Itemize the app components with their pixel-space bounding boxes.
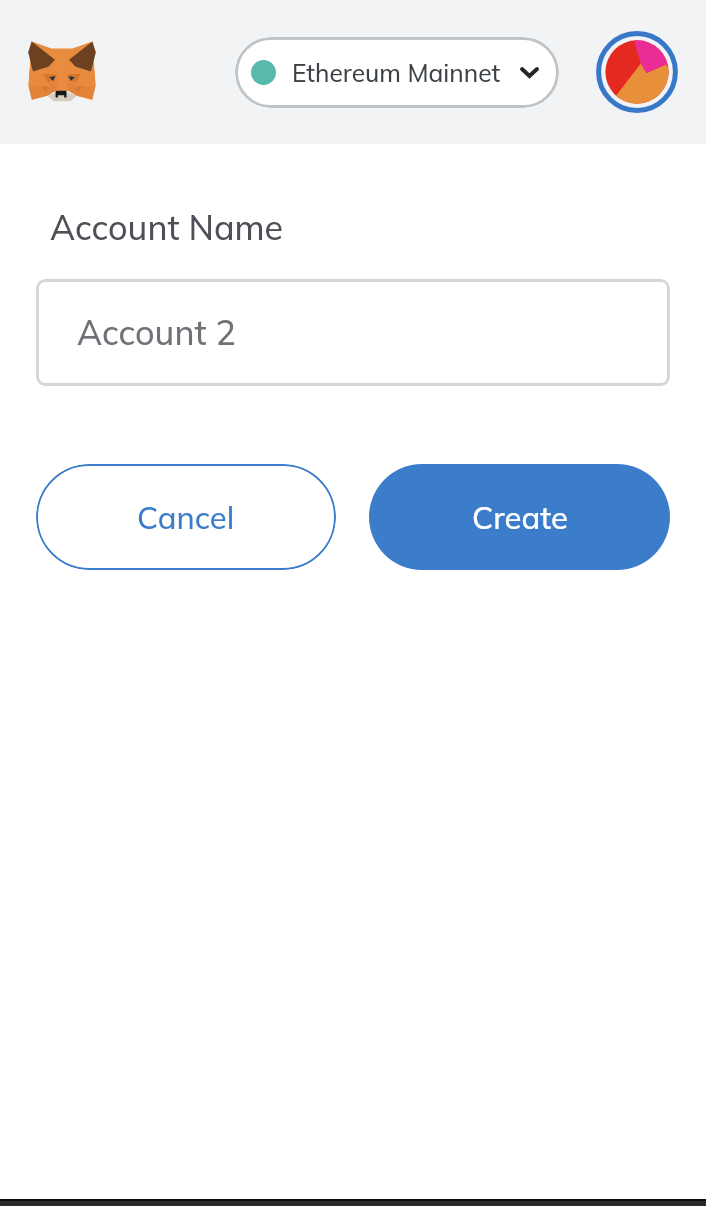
staticText: Ethereum Mainnet — [292, 57, 501, 88]
button[interactable]: Account options — [596, 31, 678, 113]
staticText: Cancel — [137, 498, 235, 537]
staticText: Account 2 — [77, 311, 236, 354]
button[interactable]: MetaMask home — [26, 38, 98, 106]
button[interactable]: Create — [369, 464, 670, 570]
staticText: Account Name — [50, 206, 284, 249]
button[interactable]: Account 2 — [36, 279, 670, 386]
staticText: Create — [472, 498, 568, 537]
button[interactable]: Cancel — [36, 464, 336, 570]
button[interactable]: Ethereum Mainnet — [235, 37, 559, 108]
